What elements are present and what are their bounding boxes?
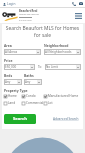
- button[interactable]: Condo: [22, 94, 44, 98]
- button[interactable]: Menu: [74, 11, 83, 20]
- button[interactable]: Advanced Search: [53, 117, 79, 121]
- button[interactable]: All Areas: [4, 49, 41, 55]
- staticText: $50,000: [5, 65, 29, 69]
- button[interactable]: Any: [24, 79, 42, 85]
- staticText: Neighborhood: [44, 43, 69, 48]
- staticText: for sale: [4, 32, 81, 39]
- staticText: Home: [8, 94, 17, 98]
- staticText: Login: [7, 2, 16, 6]
- button[interactable]: All Neighborhoods: [44, 49, 81, 55]
- staticText: Beaufort Real Estate: [19, 9, 40, 13]
- button[interactable]: Land: [4, 101, 22, 105]
- button[interactable]: Manufactured Home: [44, 94, 79, 98]
- staticText: Baths: [24, 73, 34, 78]
- staticText: Commercial: [26, 101, 44, 105]
- staticText: Manufactured Home: [48, 94, 79, 98]
- button[interactable]: Email: [78, 1, 83, 6]
- staticText: Homes and Land for Sale: [19, 13, 40, 16]
- staticText: All Areas: [5, 50, 35, 54]
- staticText: Beds: [4, 73, 13, 78]
- staticText: Any: [25, 80, 36, 84]
- staticText: All Neighborhoods: [45, 50, 75, 54]
- staticText: Property Type: [4, 88, 28, 93]
- button[interactable]: Lot: [44, 101, 53, 105]
- staticText: Land: [8, 101, 16, 105]
- button[interactable]: Search: [4, 114, 36, 124]
- button[interactable]: Login: [2, 2, 17, 6]
- staticText: No Limit: [46, 65, 75, 69]
- staticText: Condo: [26, 94, 36, 98]
- staticText: 843-000-0000: [19, 19, 32, 22]
- staticText: Price: [4, 58, 13, 63]
- button[interactable]: Commercial: [22, 101, 44, 105]
- button[interactable]: No Limit: [45, 64, 81, 70]
- staticText: Area: [4, 43, 12, 48]
- button[interactable]: Any: [4, 79, 22, 85]
- staticText: Lot: [48, 101, 53, 105]
- button[interactable]: Call: [71, 1, 76, 6]
- staticText: Search: [13, 116, 27, 122]
- button[interactable]: $50,000: [4, 64, 35, 70]
- button[interactable]: Home: [4, 94, 22, 98]
- staticText: Search Beaufort MLS for Homes: [4, 25, 81, 32]
- staticText: To: [38, 65, 42, 69]
- staticText: Any: [5, 80, 16, 84]
